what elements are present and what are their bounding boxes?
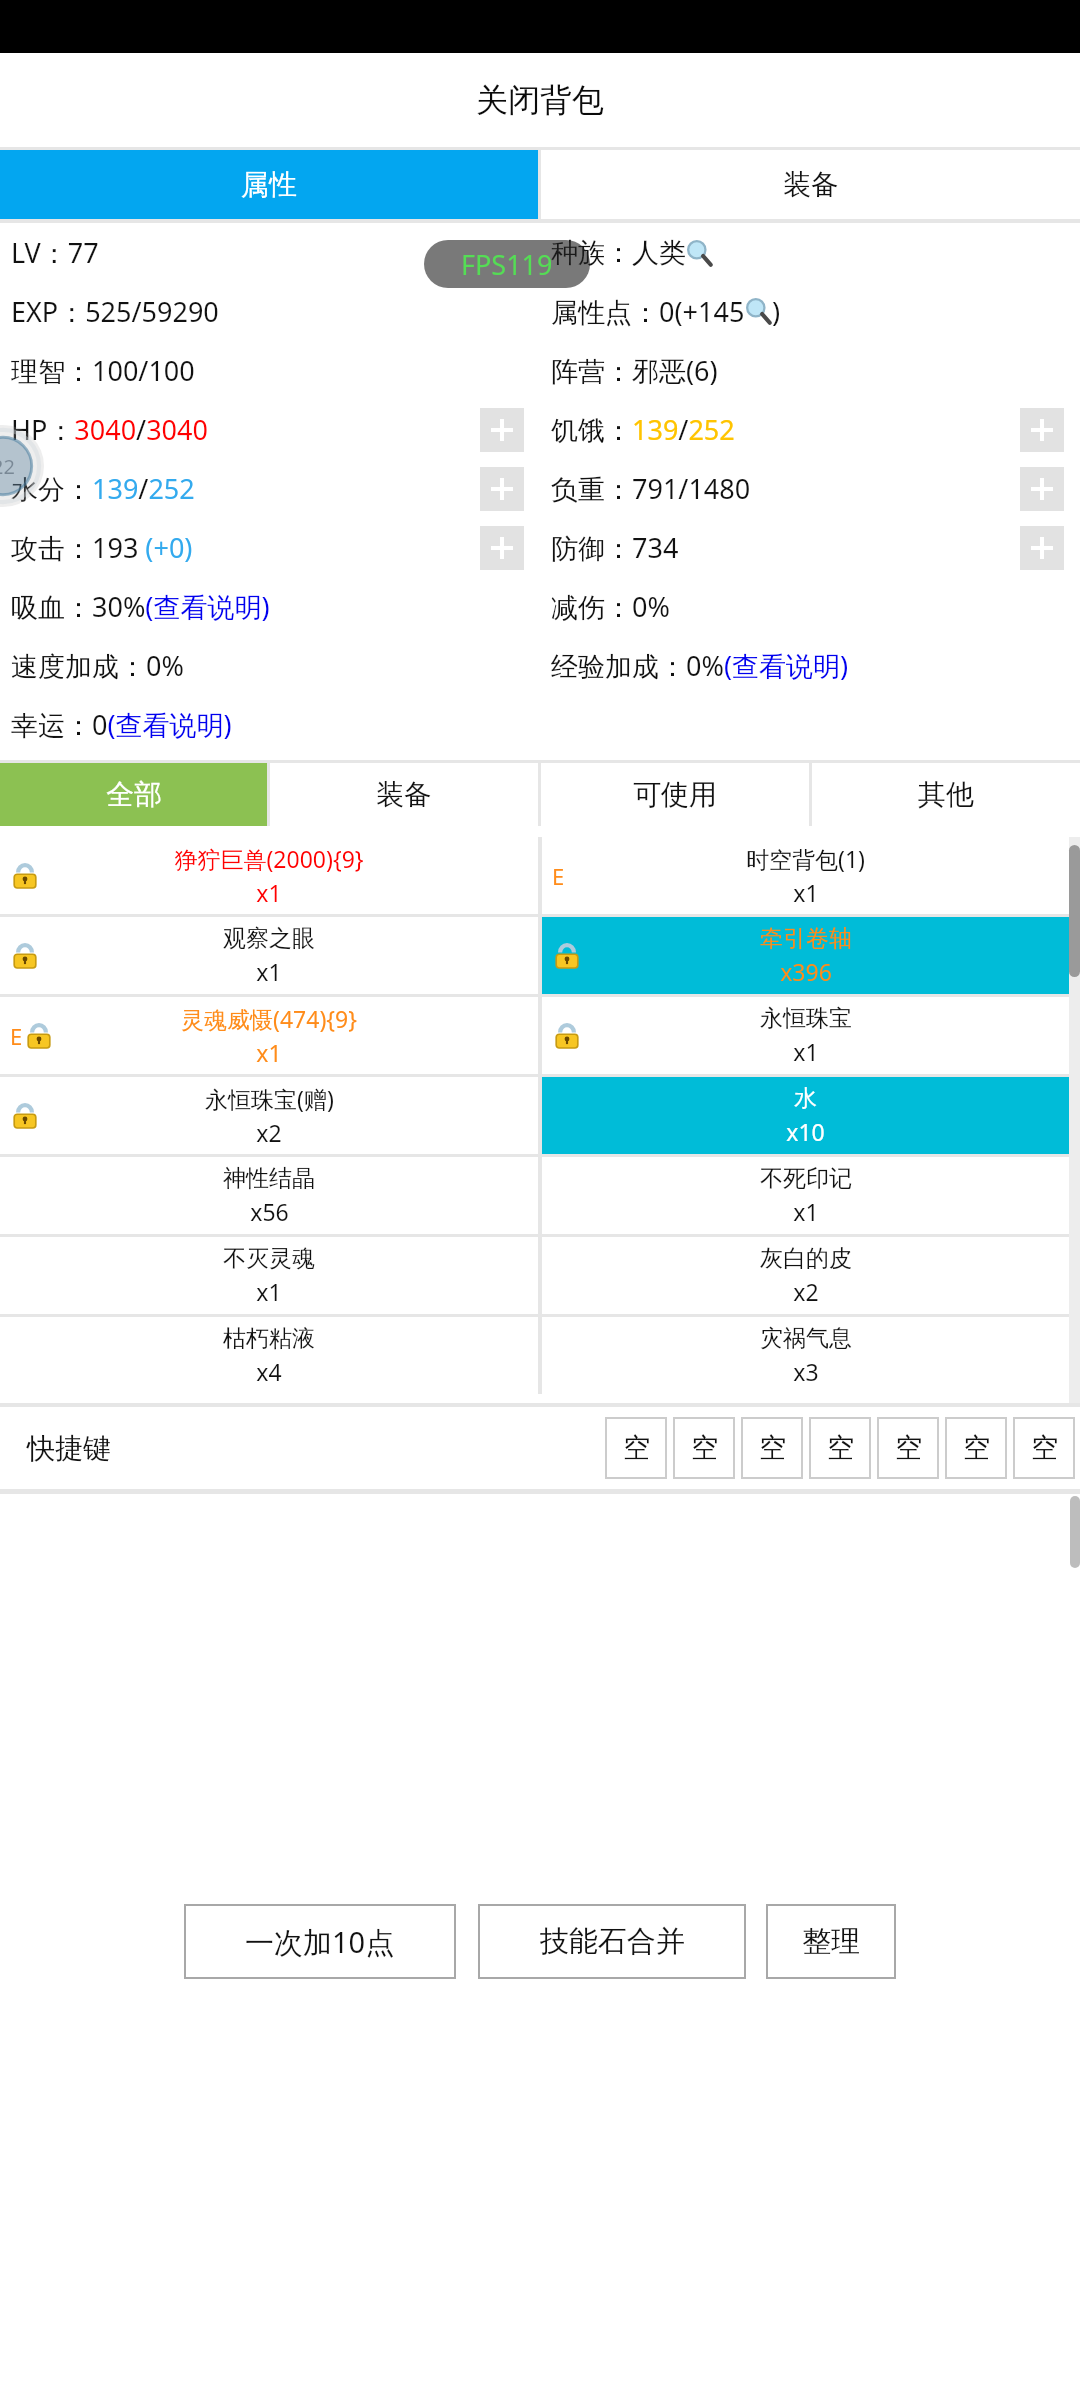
staticText: x2: [256, 1117, 282, 1148]
button[interactable]: 空: [809, 1417, 871, 1479]
staticText: 技能石合并: [540, 1923, 685, 1960]
button[interactable]: 技能石合并: [478, 1904, 746, 1979]
staticText: 饥饿：139/252: [551, 411, 735, 448]
staticText: ): [772, 293, 781, 330]
staticText: x1: [793, 877, 819, 908]
staticText: 攻击：193 (+0): [11, 529, 193, 566]
button[interactable]: 灵魂威慑(474){9}: [0, 997, 538, 1074]
button[interactable]: 神性结晶: [0, 1157, 538, 1234]
staticText: 空: [827, 1431, 854, 1465]
staticText: x1: [256, 956, 282, 987]
staticText: 永恒珠宝: [760, 1004, 852, 1033]
staticText: 防御：734: [551, 529, 679, 566]
staticText: 幸运：0(查看说明): [11, 706, 232, 743]
button[interactable]: 空: [741, 1417, 803, 1479]
staticText: x1: [793, 1036, 819, 1067]
button[interactable]: 全部: [0, 763, 267, 826]
staticText: x1: [793, 1196, 819, 1227]
staticText: x396: [780, 956, 832, 987]
button[interactable]: 水: [542, 1077, 1069, 1154]
button[interactable]: 空: [945, 1417, 1007, 1479]
staticText: E: [10, 1021, 23, 1051]
staticText: 不死印记: [760, 1164, 852, 1193]
staticText: 22: [0, 453, 15, 480]
button[interactable]: Increase: [1020, 408, 1064, 452]
staticText: 灰白的皮: [760, 1244, 852, 1273]
staticText: 减伤：0%: [551, 588, 670, 625]
staticText: 空: [691, 1431, 718, 1465]
staticText: 其他: [918, 777, 974, 812]
staticText: 灵魂威慑(474){9}: [181, 1003, 357, 1034]
button[interactable]: 装备: [541, 150, 1080, 219]
staticText: E: [552, 861, 565, 891]
button[interactable]: Increase: [480, 408, 524, 452]
button[interactable]: Increase: [480, 467, 524, 511]
button[interactable]: 空: [673, 1417, 735, 1479]
staticText: 可使用: [633, 777, 717, 812]
staticText: 空: [895, 1431, 922, 1465]
staticText: 整理: [802, 1923, 860, 1960]
staticText: 不灭灵魂: [223, 1244, 315, 1273]
staticText: 吸血：30%(查看说明): [11, 588, 270, 625]
staticText: x3: [793, 1356, 819, 1387]
staticText: x56: [250, 1196, 289, 1227]
staticText: 负重：791/1480: [551, 470, 751, 507]
other: FPS overlay: [424, 240, 590, 288]
staticText: 牵引卷轴: [760, 924, 852, 953]
staticText: 速度加成：0%: [11, 647, 184, 684]
button[interactable]: 灾祸气息: [542, 1317, 1069, 1394]
staticText: 属性: [241, 167, 297, 202]
button[interactable]: Increase: [1020, 467, 1064, 511]
staticText: 狰狞巨兽(2000){9}: [174, 843, 364, 874]
staticText: 快捷键: [27, 1431, 111, 1466]
button[interactable]: 永恒珠宝(赠): [0, 1077, 538, 1154]
staticText: 装备: [376, 777, 432, 812]
button[interactable]: 牵引卷轴: [542, 917, 1069, 994]
button[interactable]: 装备: [270, 763, 538, 826]
button[interactable]: 不死印记: [542, 1157, 1069, 1234]
button[interactable]: 空: [605, 1417, 667, 1479]
staticText: 空: [1031, 1431, 1058, 1465]
staticText: 空: [759, 1431, 786, 1465]
button[interactable]: 时空背包(1): [542, 837, 1069, 914]
staticText: 理智：100/100: [11, 352, 195, 389]
staticText: x1: [256, 1037, 282, 1068]
button[interactable]: 狰狞巨兽(2000){9}: [0, 837, 538, 914]
staticText: 观察之眼: [223, 924, 315, 953]
staticText: 全部: [106, 777, 162, 812]
button[interactable]: 灰白的皮: [542, 1237, 1069, 1314]
staticText: EXP：525/59290: [11, 293, 219, 330]
staticText: x2: [793, 1276, 819, 1307]
button[interactable]: 观察之眼: [0, 917, 538, 994]
button[interactable]: Increase: [1020, 526, 1064, 570]
staticText: 灾祸气息: [760, 1324, 852, 1353]
button[interactable]: 枯朽粘液: [0, 1317, 538, 1394]
staticText: 一次加10点: [245, 1922, 395, 1962]
staticText: x1: [256, 877, 282, 908]
button[interactable]: 空: [1013, 1417, 1075, 1479]
staticText: 永恒珠宝(赠): [205, 1083, 334, 1114]
button[interactable]: Increase: [480, 526, 524, 570]
button[interactable]: 整理: [766, 1904, 896, 1979]
staticText: LV：77: [11, 234, 99, 271]
staticText: 时空背包(1): [746, 843, 865, 874]
button[interactable]: 其他: [812, 763, 1080, 826]
button[interactable]: 可使用: [541, 763, 809, 826]
staticText: FPS119: [461, 246, 553, 283]
button[interactable]: 属性: [0, 150, 538, 219]
staticText: HP：3040/3040: [11, 411, 208, 448]
staticText: 水分：139/252: [11, 470, 195, 507]
staticText: x4: [256, 1356, 282, 1387]
button[interactable]: 不灭灵魂: [0, 1237, 538, 1314]
staticText: 装备: [783, 167, 839, 202]
button[interactable]: 关闭背包: [476, 80, 604, 120]
staticText: 关闭背包: [476, 80, 604, 120]
staticText: 神性结晶: [223, 1164, 315, 1193]
button[interactable]: 永恒珠宝: [542, 997, 1069, 1074]
staticText: 枯朽粘液: [223, 1324, 315, 1353]
staticText: 种族：人类: [551, 236, 686, 270]
button[interactable]: 空: [877, 1417, 939, 1479]
staticText: x1: [256, 1276, 282, 1307]
staticText: x10: [786, 1116, 825, 1147]
button[interactable]: 一次加10点: [184, 1904, 456, 1979]
